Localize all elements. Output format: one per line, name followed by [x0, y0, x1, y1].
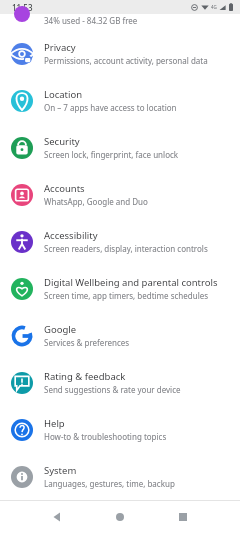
button[interactable]: System: [0, 453, 240, 500]
button[interactable]: Location: [0, 77, 240, 124]
button[interactable]: Digital Wellbeing and parental controls: [0, 265, 240, 312]
staticText: 11:53: [12, 2, 33, 13]
button[interactable]: Recent apps: [170, 504, 196, 530]
button[interactable]: Privacy: [0, 30, 240, 77]
button[interactable]: Security: [0, 124, 240, 171]
staticText: How-to & troubleshooting topics: [44, 431, 167, 442]
staticText: Accessibility: [44, 229, 98, 242]
staticText: Rating & feedback: [44, 370, 126, 383]
staticText: Privacy: [44, 41, 76, 54]
button[interactable]: Help: [0, 406, 240, 453]
staticText: Screen time, app timers, bedtime schedul…: [44, 290, 209, 301]
button[interactable]: Home: [107, 504, 133, 530]
staticText: 4G: [211, 4, 217, 10]
staticText: Screen lock, fingerprint, face unlock: [44, 149, 179, 160]
staticText: Security: [44, 135, 80, 148]
staticText: Accounts: [44, 182, 85, 195]
staticText: Help: [44, 417, 65, 430]
staticText: Google: [44, 323, 77, 336]
staticText: Digital Wellbeing and parental controls: [44, 276, 218, 289]
staticText: Languages, gestures, time, backup: [44, 478, 175, 489]
staticText: Permissions, account activity, personal …: [44, 55, 208, 66]
staticText: 34% used - 84.32 GB free: [44, 15, 138, 26]
staticText: WhatsApp, Google and Duo: [44, 196, 148, 207]
staticText: On – 7 apps have access to location: [44, 102, 177, 113]
staticText: Location: [44, 88, 83, 101]
staticText: Screen readers, display, interaction con…: [44, 243, 208, 254]
staticText: System: [44, 464, 77, 477]
button[interactable]: Back: [44, 504, 70, 530]
button[interactable]: 34% used - 84.32 GB free: [0, 14, 240, 30]
button[interactable]: Rating & feedback: [0, 359, 240, 406]
staticText: Send suggestions & rate your device: [44, 384, 181, 395]
button[interactable]: Accessibility: [0, 218, 240, 265]
staticText: Services & preferences: [44, 337, 130, 348]
button[interactable]: Accounts: [0, 171, 240, 218]
button[interactable]: Google: [0, 312, 240, 359]
